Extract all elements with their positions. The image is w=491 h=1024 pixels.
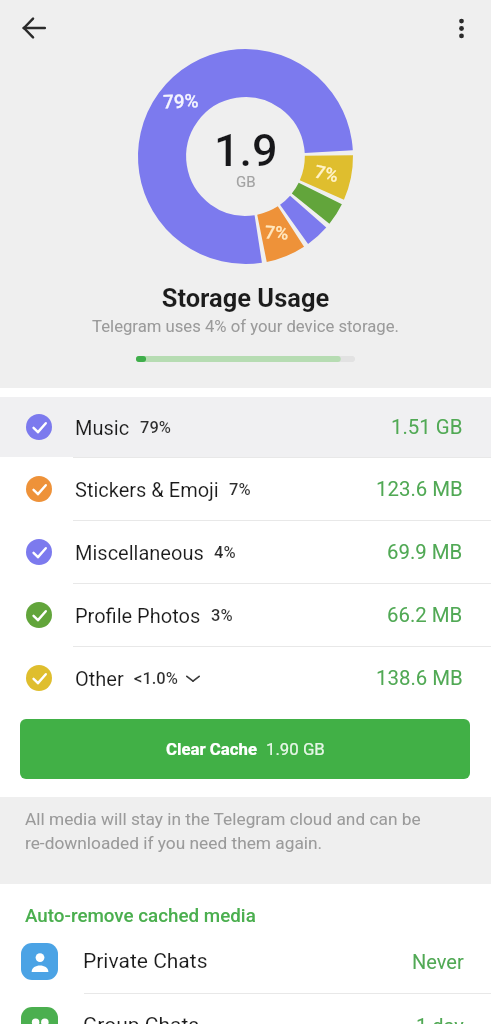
button[interactable]: Clear Cache: [20, 719, 470, 779]
button[interactable]: Other: [0, 646, 491, 709]
button[interactable]: Stickers & Emoji: [0, 457, 491, 520]
staticText: 138.6 MB: [376, 666, 463, 690]
staticText: GB: [236, 173, 256, 191]
staticText: Never: [412, 950, 464, 973]
button[interactable]: Profile Photos: [0, 583, 491, 646]
staticText: 7%: [313, 161, 341, 186]
button[interactable]: Back: [13, 7, 55, 49]
staticText: Clear Cache: [166, 739, 258, 759]
staticText: <1.0%: [134, 669, 178, 688]
staticText: Auto-remove cached media: [25, 905, 256, 927]
staticText: Other: [75, 667, 124, 690]
staticText: Miscellaneous: [75, 541, 204, 564]
staticText: 123.6 MB: [376, 477, 463, 501]
staticText: 1.51 GB: [391, 415, 463, 439]
staticText: 1.9: [214, 124, 278, 177]
staticText: Profile Photos: [75, 604, 201, 627]
staticText: Storage Usage: [0, 283, 491, 313]
button[interactable]: Group Chats: [0, 993, 491, 1024]
button[interactable]: Miscellaneous: [0, 520, 491, 583]
staticText: 79%: [140, 418, 171, 437]
staticText: Music: [75, 416, 130, 439]
button[interactable]: More options: [440, 7, 482, 49]
staticText: Telegram uses 4% of your device storage.: [0, 317, 491, 337]
button[interactable]: Private Chats: [0, 930, 491, 993]
staticText: 4%: [214, 543, 236, 562]
staticText: 66.2 MB: [387, 603, 463, 627]
staticText: 7%: [264, 221, 290, 244]
staticText: 1.90 GB: [266, 739, 325, 759]
staticText: 3%: [211, 606, 233, 625]
staticText: Group Chats: [83, 1013, 200, 1024]
staticText: Private Chats: [83, 949, 208, 974]
staticText: 1 day: [416, 1014, 464, 1024]
staticText: 69.9 MB: [387, 540, 463, 564]
staticText: 79%: [163, 89, 199, 113]
staticText: re-downloaded if you need them again.: [25, 833, 323, 853]
button[interactable]: Music: [0, 397, 491, 457]
staticText: 7%: [229, 480, 251, 499]
staticText: All media will stay in the Telegram clou…: [25, 809, 421, 829]
staticText: Stickers & Emoji: [75, 478, 219, 501]
